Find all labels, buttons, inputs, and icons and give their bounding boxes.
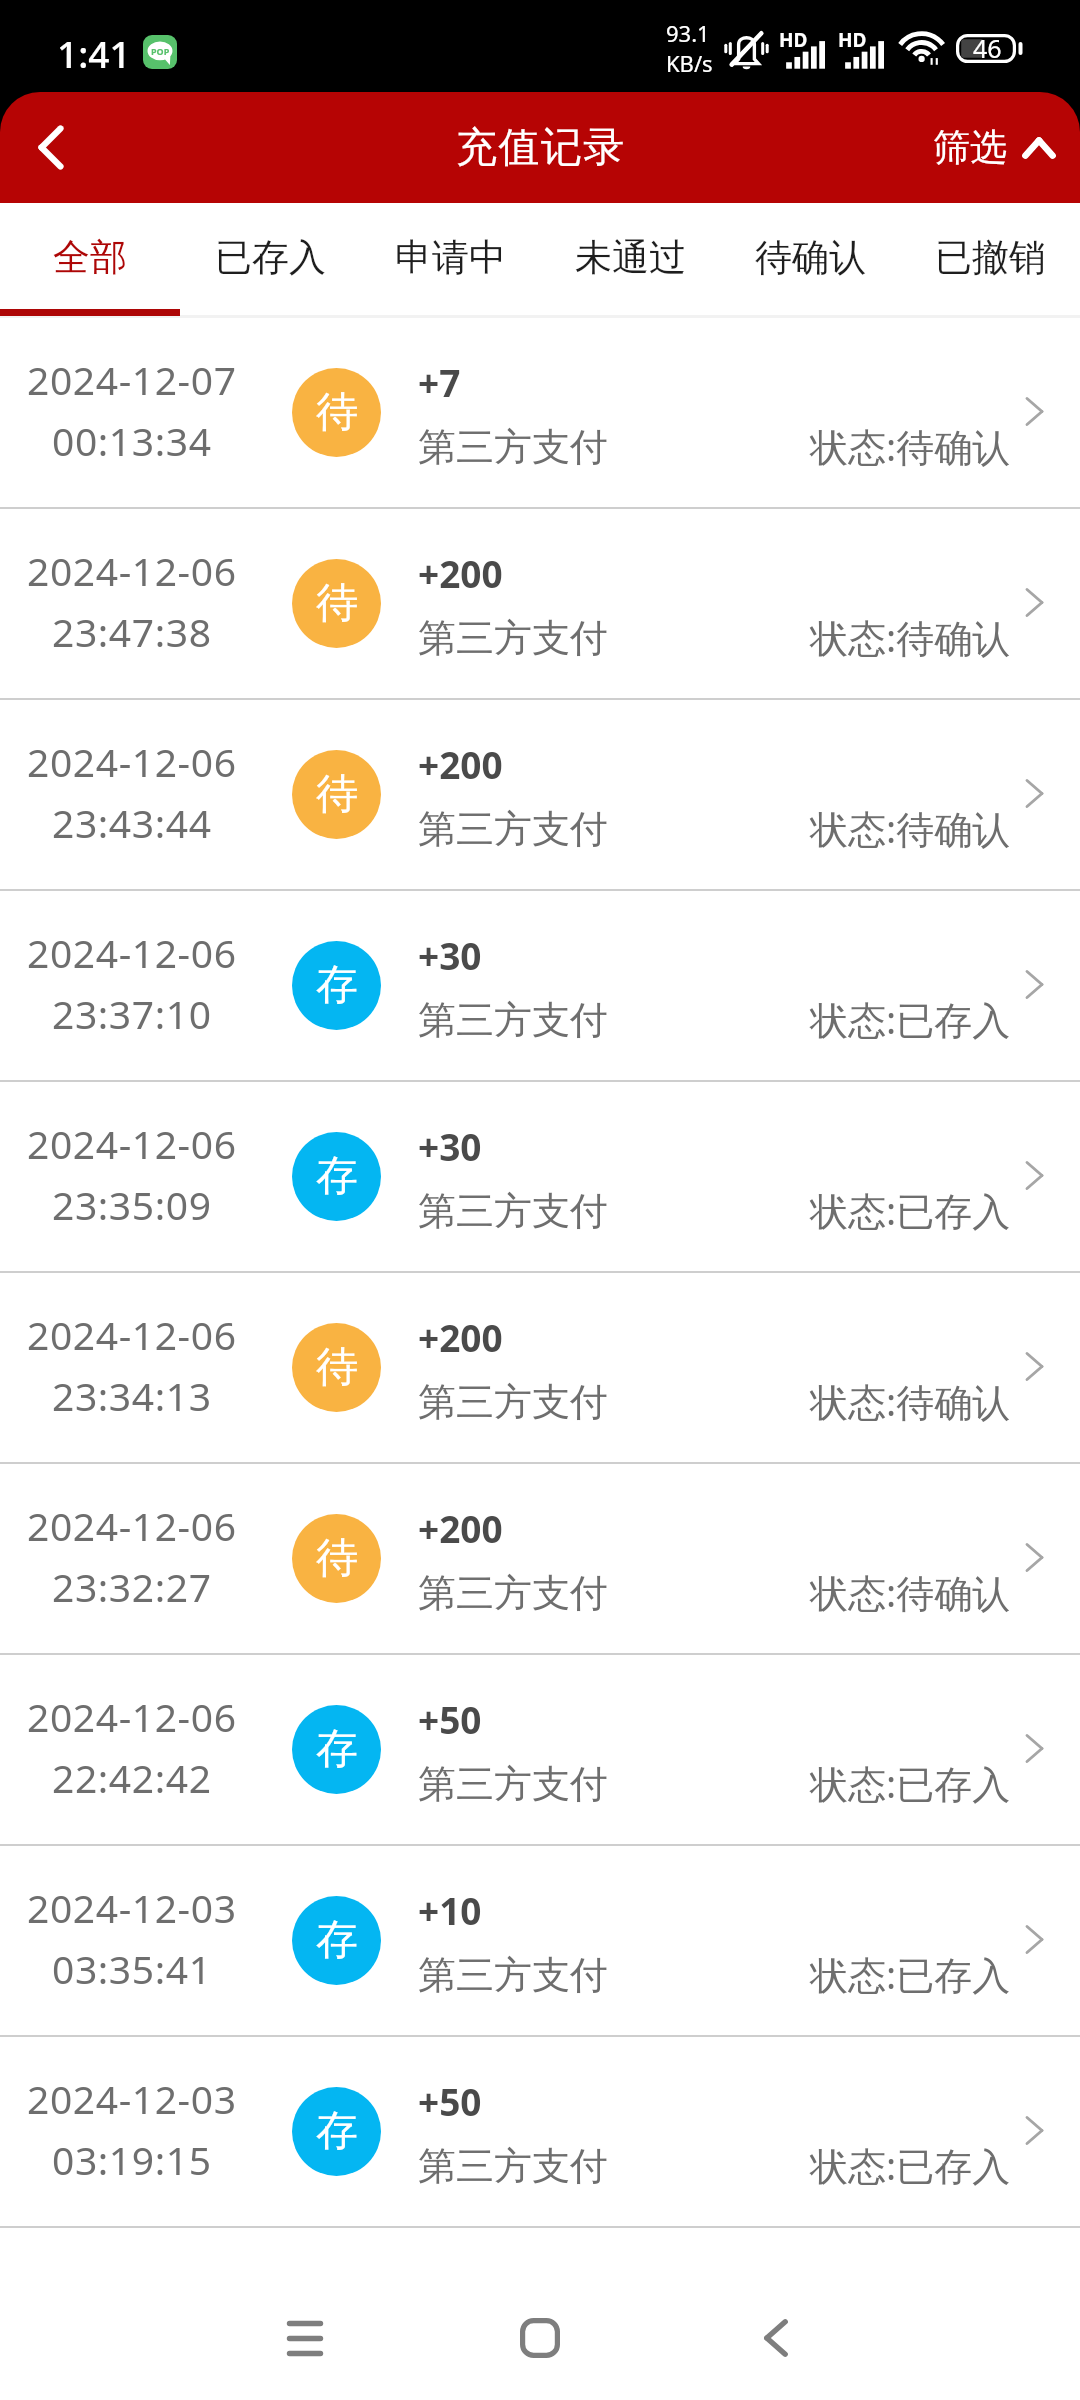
staticText: 状态:待确认 (810, 1375, 1011, 1427)
staticText: 待 (316, 1532, 358, 1585)
staticText: 状态:待确认 (810, 1566, 1011, 1618)
staticText: 第三方支付 (418, 614, 608, 662)
staticText: 23:47:38 (52, 605, 212, 658)
button[interactable]: 2024-12-07 (0, 318, 1080, 509)
staticText: 2024-12-06 (27, 735, 237, 788)
staticText: 第三方支付 (418, 996, 608, 1044)
staticText: 2024-12-03 (27, 2072, 237, 2125)
button[interactable]: 申请中 (360, 203, 540, 318)
staticText: 2024-12-06 (27, 1117, 237, 1170)
staticText: 状态:已存入 (810, 1184, 1011, 1236)
staticText: 23:37:10 (52, 987, 212, 1040)
button[interactable]: 已存入 (180, 203, 360, 318)
staticText: 2024-12-06 (27, 544, 237, 597)
staticText: 存 (316, 2105, 358, 2158)
button[interactable]: 全部 (0, 203, 180, 318)
button[interactable]: 未通过 (540, 203, 720, 318)
staticText: 待 (316, 768, 358, 821)
staticText: 待 (316, 577, 358, 630)
staticText: +7 (418, 357, 461, 407)
staticText: 存 (316, 1150, 358, 1203)
staticText: 23:34:13 (52, 1369, 212, 1422)
button[interactable]: 返回 (0, 92, 102, 203)
staticText: 第三方支付 (418, 1378, 608, 1426)
staticText: +10 (418, 1885, 482, 1935)
button[interactable]: 2024-12-06 (0, 891, 1080, 1082)
staticText: 状态:待确认 (810, 611, 1011, 663)
staticText: 状态:已存入 (810, 1948, 1011, 2000)
staticText: +200 (418, 1312, 503, 1362)
staticText: +30 (418, 1121, 482, 1171)
button[interactable]: 已撤销 (900, 203, 1080, 318)
staticText: 状态:待确认 (810, 802, 1011, 854)
staticText: 筛选 (933, 124, 1007, 171)
staticText: 待 (316, 386, 358, 439)
staticText: 03:19:15 (52, 2133, 212, 2186)
staticText: 93.1 (666, 18, 710, 48)
staticText: 状态:已存入 (810, 2139, 1011, 2191)
button[interactable]: Back (716, 2278, 836, 2398)
staticText: 23:35:09 (52, 1178, 212, 1231)
staticText: KB/s (666, 48, 713, 78)
staticText: 23:32:27 (52, 1560, 212, 1613)
staticText: +50 (418, 2076, 482, 2126)
button[interactable]: 筛选 (933, 92, 1056, 203)
staticText: 第三方支付 (418, 1569, 608, 1617)
staticText: 22:42:42 (52, 1751, 212, 1804)
staticText: 2024-12-07 (27, 353, 237, 406)
staticText: 第三方支付 (418, 1951, 608, 1999)
staticText: 00:13:34 (52, 414, 212, 467)
staticText: 第三方支付 (418, 805, 608, 853)
staticText: 已撤销 (935, 234, 1046, 281)
button[interactable]: 2024-12-06 (0, 1464, 1080, 1655)
button[interactable]: 2024-12-06 (0, 700, 1080, 891)
staticText: 第三方支付 (418, 423, 608, 471)
button[interactable]: 2024-12-06 (0, 509, 1080, 700)
staticText: +50 (418, 1694, 482, 1744)
staticText: 2024-12-06 (27, 926, 237, 979)
staticText: 状态:已存入 (810, 993, 1011, 1045)
staticText: 46 (973, 31, 1002, 65)
staticText: +200 (418, 548, 503, 598)
button[interactable]: 2024-12-06 (0, 1655, 1080, 1846)
staticText: POP (151, 45, 170, 57)
staticText: +200 (418, 739, 503, 789)
staticText: 23:43:44 (52, 796, 212, 849)
staticText: 申请中 (395, 234, 506, 281)
staticText: +200 (418, 1503, 503, 1553)
staticText: 待 (316, 1341, 358, 1394)
staticText: 状态:待确认 (810, 420, 1011, 472)
staticText: HD (838, 27, 867, 53)
button[interactable]: 2024-12-06 (0, 1273, 1080, 1464)
staticText: 2024-12-06 (27, 1308, 237, 1361)
staticText: 存 (316, 1723, 358, 1776)
staticText: 待确认 (755, 234, 866, 281)
button[interactable]: Home (480, 2278, 600, 2398)
staticText: +30 (418, 930, 482, 980)
staticText: 03:35:41 (52, 1942, 212, 1995)
button[interactable]: 2024-12-03 (0, 2037, 1080, 2228)
button[interactable]: 2024-12-03 (0, 1846, 1080, 2037)
staticText: 2024-12-06 (27, 1499, 237, 1552)
staticText: 第三方支付 (418, 1187, 608, 1235)
staticText: HD (779, 27, 808, 53)
button[interactable]: 2024-12-06 (0, 1082, 1080, 1273)
staticText: 状态:已存入 (810, 1757, 1011, 1809)
staticText: 2024-12-06 (27, 1690, 237, 1743)
staticText: 已存入 (215, 234, 326, 281)
staticText: 存 (316, 1914, 358, 1967)
staticText: 全部 (53, 234, 127, 281)
button[interactable]: 待确认 (720, 203, 900, 318)
staticText: 未通过 (575, 234, 686, 281)
staticText: 1:41 (57, 28, 131, 78)
staticText: 第三方支付 (418, 1760, 608, 1808)
staticText: 存 (316, 959, 358, 1012)
staticText: 第三方支付 (418, 2142, 608, 2190)
staticText: 充值记录 (455, 122, 625, 174)
button[interactable]: Recents (245, 2278, 365, 2398)
staticText: 2024-12-03 (27, 1881, 237, 1934)
